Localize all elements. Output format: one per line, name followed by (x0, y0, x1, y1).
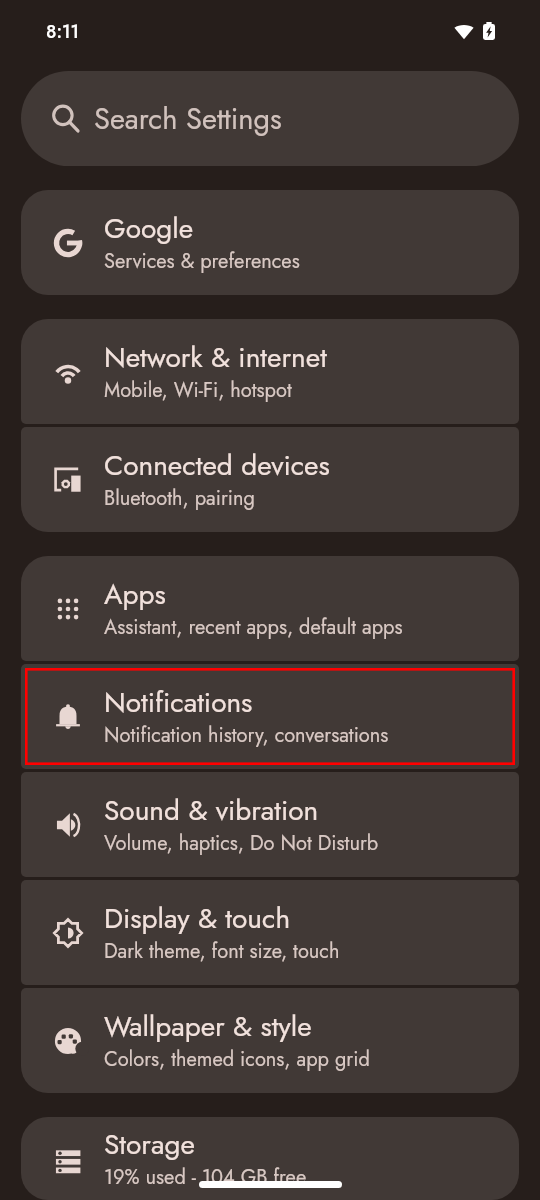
staticText: 19% used - 104 GB free (104, 1163, 307, 1192)
staticText: Colors, themed icons, app grid (104, 1045, 370, 1074)
staticText: Mobile, Wi-Fi, hotspot (104, 376, 292, 405)
button[interactable]: Apps (21, 556, 519, 661)
button[interactable]: Wallpaper & style (21, 988, 519, 1093)
button[interactable]: Connected devices (21, 427, 519, 532)
staticText: Network & internet (104, 337, 327, 377)
staticText: Sound & vibration (104, 790, 319, 830)
button[interactable]: Search Settings (21, 71, 519, 166)
button[interactable]: Storage (21, 1117, 519, 1200)
button[interactable]: Google (21, 190, 519, 295)
staticText: 8:11 (46, 19, 80, 45)
staticText: Bluetooth, pairing (104, 484, 255, 513)
staticText: Display & touch (104, 898, 291, 938)
staticText: Volume, haptics, Do Not Disturb (104, 829, 379, 858)
staticText: Connected devices (104, 445, 330, 485)
button[interactable]: Notifications (21, 664, 519, 769)
staticText: Google (104, 208, 194, 248)
staticText: Apps (104, 574, 166, 614)
staticText: Wallpaper & style (104, 1006, 312, 1046)
staticText: Storage (104, 1124, 195, 1164)
staticText: Search Settings (94, 98, 282, 140)
staticText: Dark theme, font size, touch (104, 937, 340, 966)
staticText: Notifications (104, 682, 253, 722)
staticText: Assistant, recent apps, default apps (104, 613, 403, 642)
staticText: Notification history, conversations (104, 721, 389, 750)
button[interactable]: Display & touch (21, 880, 519, 985)
button[interactable]: Sound & vibration (21, 772, 519, 877)
staticText: Services & preferences (104, 247, 300, 276)
button[interactable]: Network & internet (21, 319, 519, 424)
